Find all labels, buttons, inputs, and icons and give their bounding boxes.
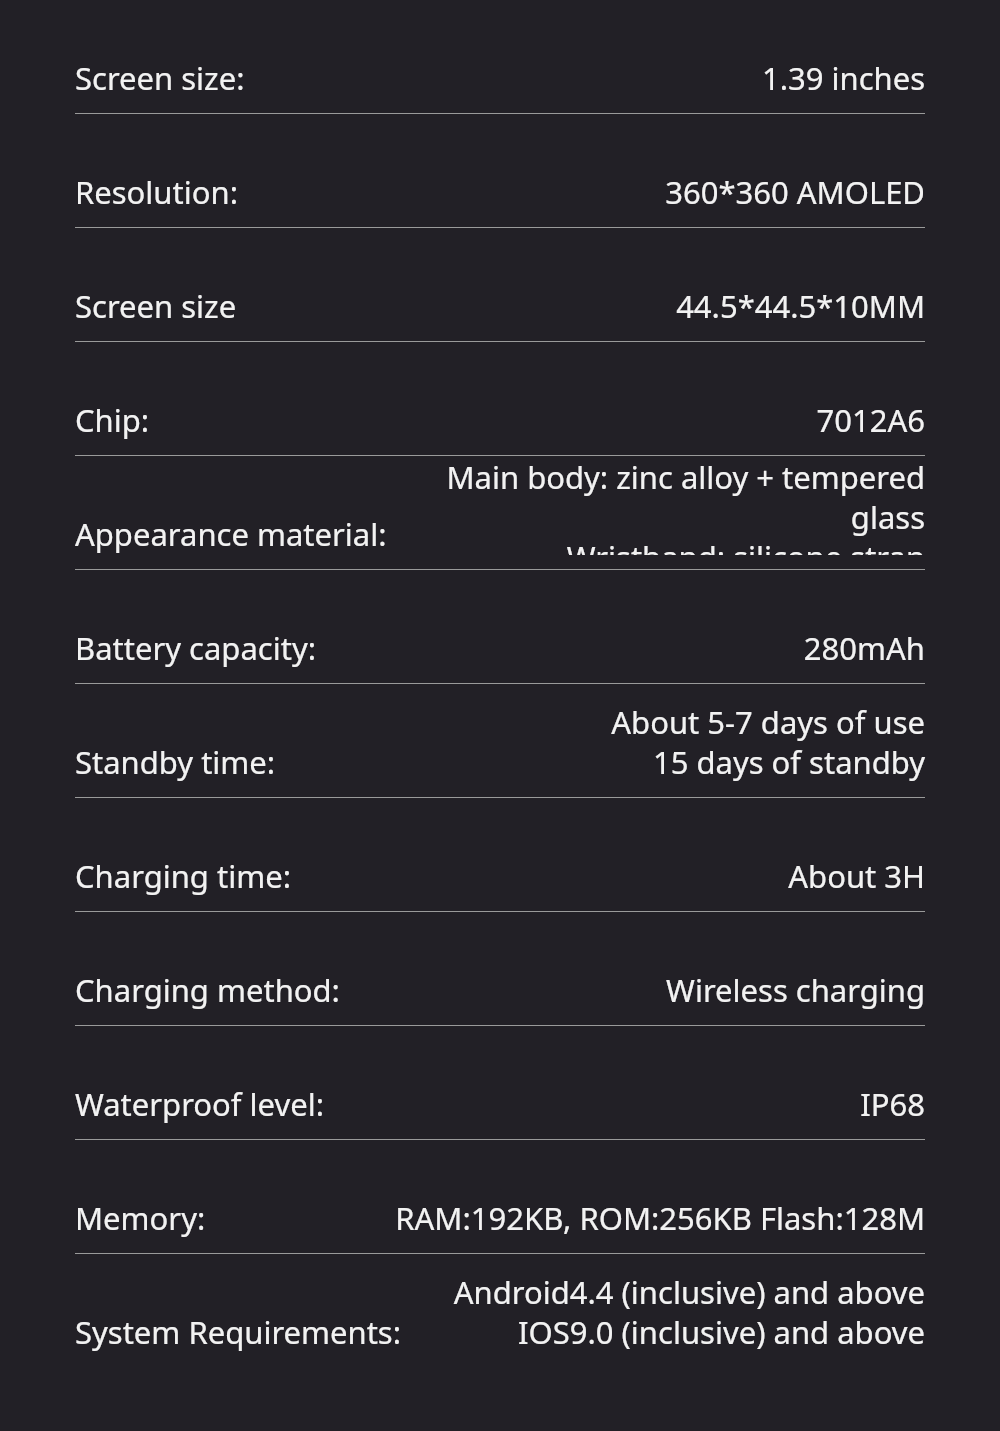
staticText: 360*360 AMOLED — [250, 171, 925, 213]
staticText: Memory: — [75, 1197, 206, 1239]
staticText: System Requirements: — [75, 1311, 402, 1353]
staticText: Battery capacity: — [75, 627, 316, 669]
staticText: About 3H — [303, 855, 925, 897]
staticText: RAM:192KB, ROM:256KB Flash:128M — [218, 1197, 925, 1239]
staticText: Appearance material: — [75, 513, 387, 555]
button[interactable]: Resolution: — [75, 114, 925, 227]
staticText: Waterproof level: — [75, 1083, 324, 1125]
staticText: Screen size — [75, 285, 237, 327]
button[interactable]: Standby time: — [75, 684, 925, 797]
staticText: Standby time: — [75, 741, 276, 783]
staticText: Wireless charging — [352, 969, 925, 1011]
staticText: Charging time: — [75, 855, 291, 897]
button[interactable]: Battery capacity: — [75, 570, 925, 683]
button[interactable]: Screen size — [75, 228, 925, 341]
button[interactable]: System Requirements: — [75, 1254, 925, 1367]
staticText: Resolution: — [75, 171, 238, 213]
staticText: Charging method: — [75, 969, 340, 1011]
staticText: Screen size: — [75, 57, 245, 99]
staticText: IP68 — [336, 1083, 925, 1125]
staticText: Chip: — [75, 399, 150, 441]
button[interactable]: Chip: — [75, 342, 925, 455]
button[interactable]: Charging method: — [75, 912, 925, 1025]
button[interactable]: Memory: — [75, 1140, 925, 1253]
staticText: About 5-7 days of use 15 days of standby — [288, 701, 925, 783]
staticText: 44.5*44.5*10MM — [249, 285, 925, 327]
button[interactable]: Charging time: — [75, 798, 925, 911]
staticText: Android4.4 (inclusive) and above IOS9.0 … — [414, 1271, 925, 1353]
button[interactable]: Screen size: — [75, 0, 925, 113]
button[interactable]: Waterproof level: — [75, 1026, 925, 1139]
staticText: Main body: zinc alloy + tempered glass W… — [399, 456, 925, 555]
staticText: 1.39 inches — [257, 57, 925, 99]
staticText: 280mAh — [328, 627, 925, 669]
staticText: 7012A6 — [162, 399, 925, 441]
button[interactable]: Appearance material: — [75, 456, 925, 569]
